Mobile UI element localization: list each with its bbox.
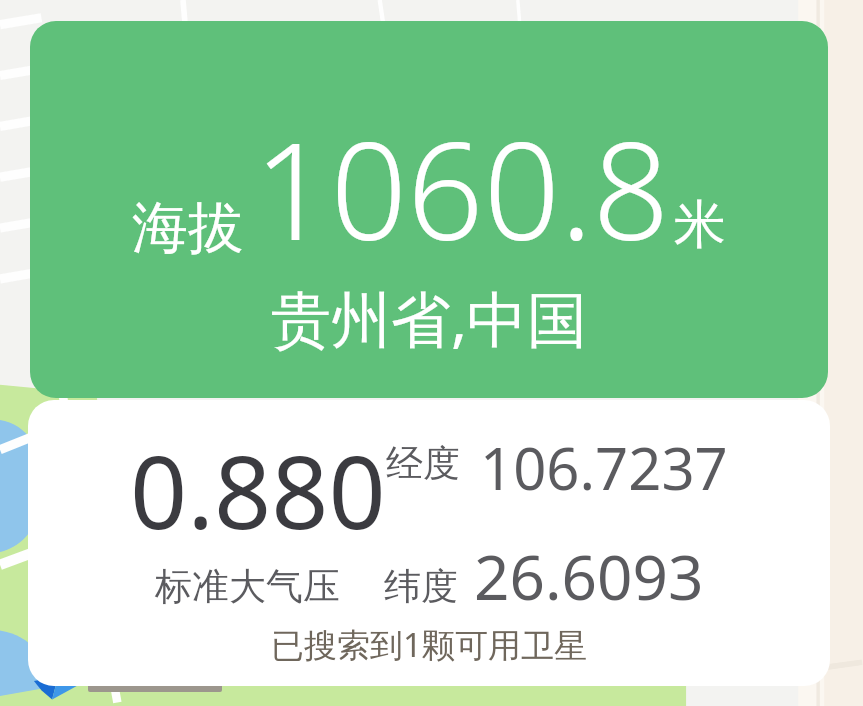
staticText: 已搜索到1颗可用卫星	[28, 622, 830, 667]
staticText: 106.7237	[480, 428, 728, 507]
staticText: 经度	[386, 440, 460, 487]
staticText: 1060.8	[254, 97, 670, 280]
staticText: 标准大气压	[155, 563, 340, 610]
staticText: 0.880	[130, 422, 386, 558]
staticText: 26.6093	[474, 534, 704, 618]
button[interactable]: 海拔	[30, 21, 828, 398]
staticText: 纬度	[384, 563, 458, 610]
staticText: 贵州省,中国	[30, 277, 828, 359]
staticText: 海拔	[132, 193, 244, 264]
button[interactable]: 0.880	[28, 400, 830, 686]
staticText: 米	[674, 192, 726, 258]
